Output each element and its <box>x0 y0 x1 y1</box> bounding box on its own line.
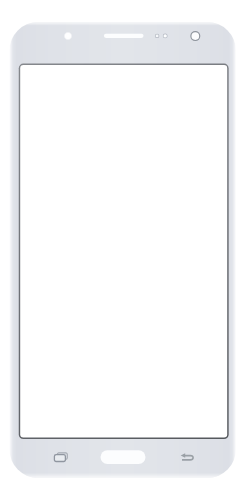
button[interactable]: Home <box>98 444 148 470</box>
button[interactable]: Recent apps <box>44 444 76 470</box>
button[interactable]: Back <box>171 444 203 470</box>
